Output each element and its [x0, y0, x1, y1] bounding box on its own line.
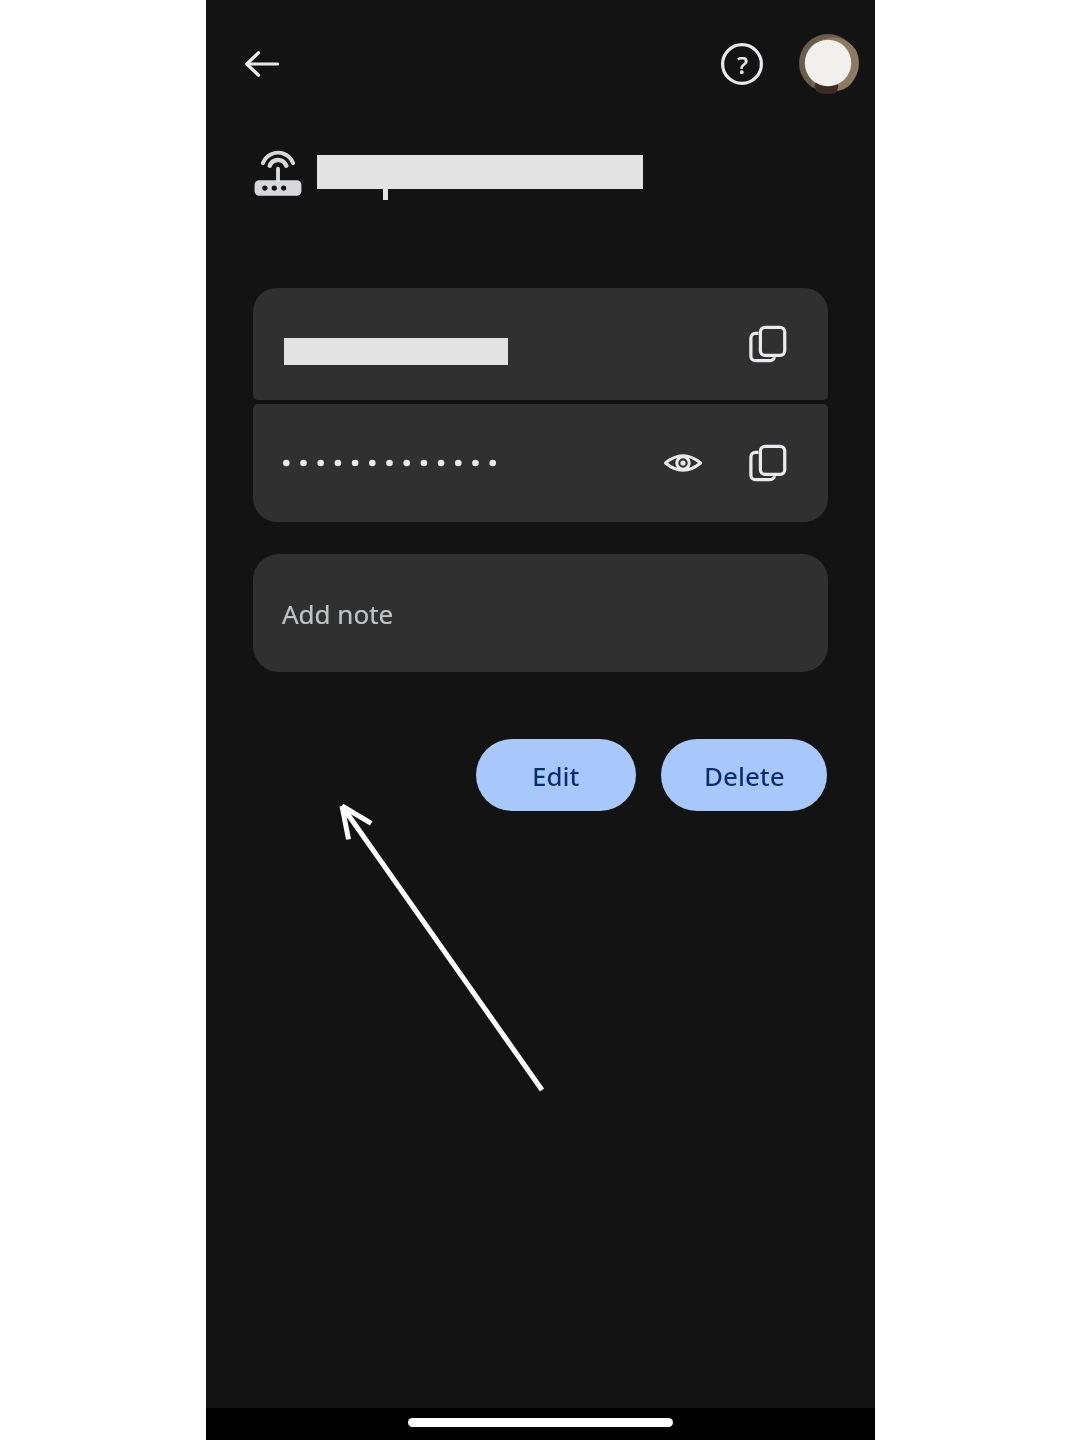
button[interactable]: Back [230, 32, 294, 96]
staticText: Delete [704, 758, 785, 793]
button[interactable]: Help [710, 32, 774, 96]
button[interactable]: Share [468, 744, 546, 822]
button[interactable]: Delete [661, 739, 827, 811]
staticText: ? [737, 48, 748, 81]
button[interactable]: Account [797, 32, 859, 94]
button[interactable]: Add note [253, 554, 828, 672]
staticText: Edit [532, 758, 580, 793]
button[interactable]: Edit [476, 739, 636, 811]
button[interactable]: Copy username [253, 288, 828, 400]
staticText: Add note [282, 596, 394, 631]
button[interactable]: Copy username [736, 312, 800, 376]
button[interactable]: Show password [253, 404, 828, 522]
button[interactable]: Copy password [736, 431, 800, 495]
button[interactable]: Show password [651, 431, 715, 495]
